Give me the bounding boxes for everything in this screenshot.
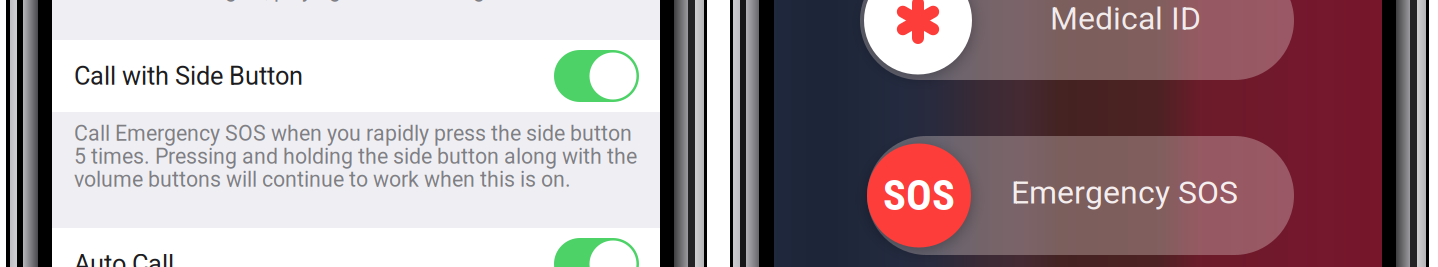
- button[interactable]: Medical ID: [860, 0, 1294, 80]
- staticText: Call Emergency SOS when you rapidly pres…: [74, 121, 632, 146]
- staticText: volume buttons will continue to work whe…: [74, 167, 571, 192]
- staticText: SOS: [883, 170, 955, 220]
- staticText: Auto Call: [74, 249, 174, 267]
- button[interactable]: Auto Call: [52, 228, 660, 267]
- staticText: Medical ID: [1050, 0, 1201, 37]
- button[interactable]: Call with Side Button: [52, 40, 660, 112]
- staticText: Call with Side Button: [74, 61, 303, 91]
- button[interactable]: SOS: [867, 136, 1294, 255]
- staticText: 5 times. Pressing and holding the side b…: [74, 144, 637, 169]
- staticText: Emergency SOS: [1011, 174, 1238, 211]
- staticText: a countdown begins, playing a loud warni…: [74, 0, 491, 2]
